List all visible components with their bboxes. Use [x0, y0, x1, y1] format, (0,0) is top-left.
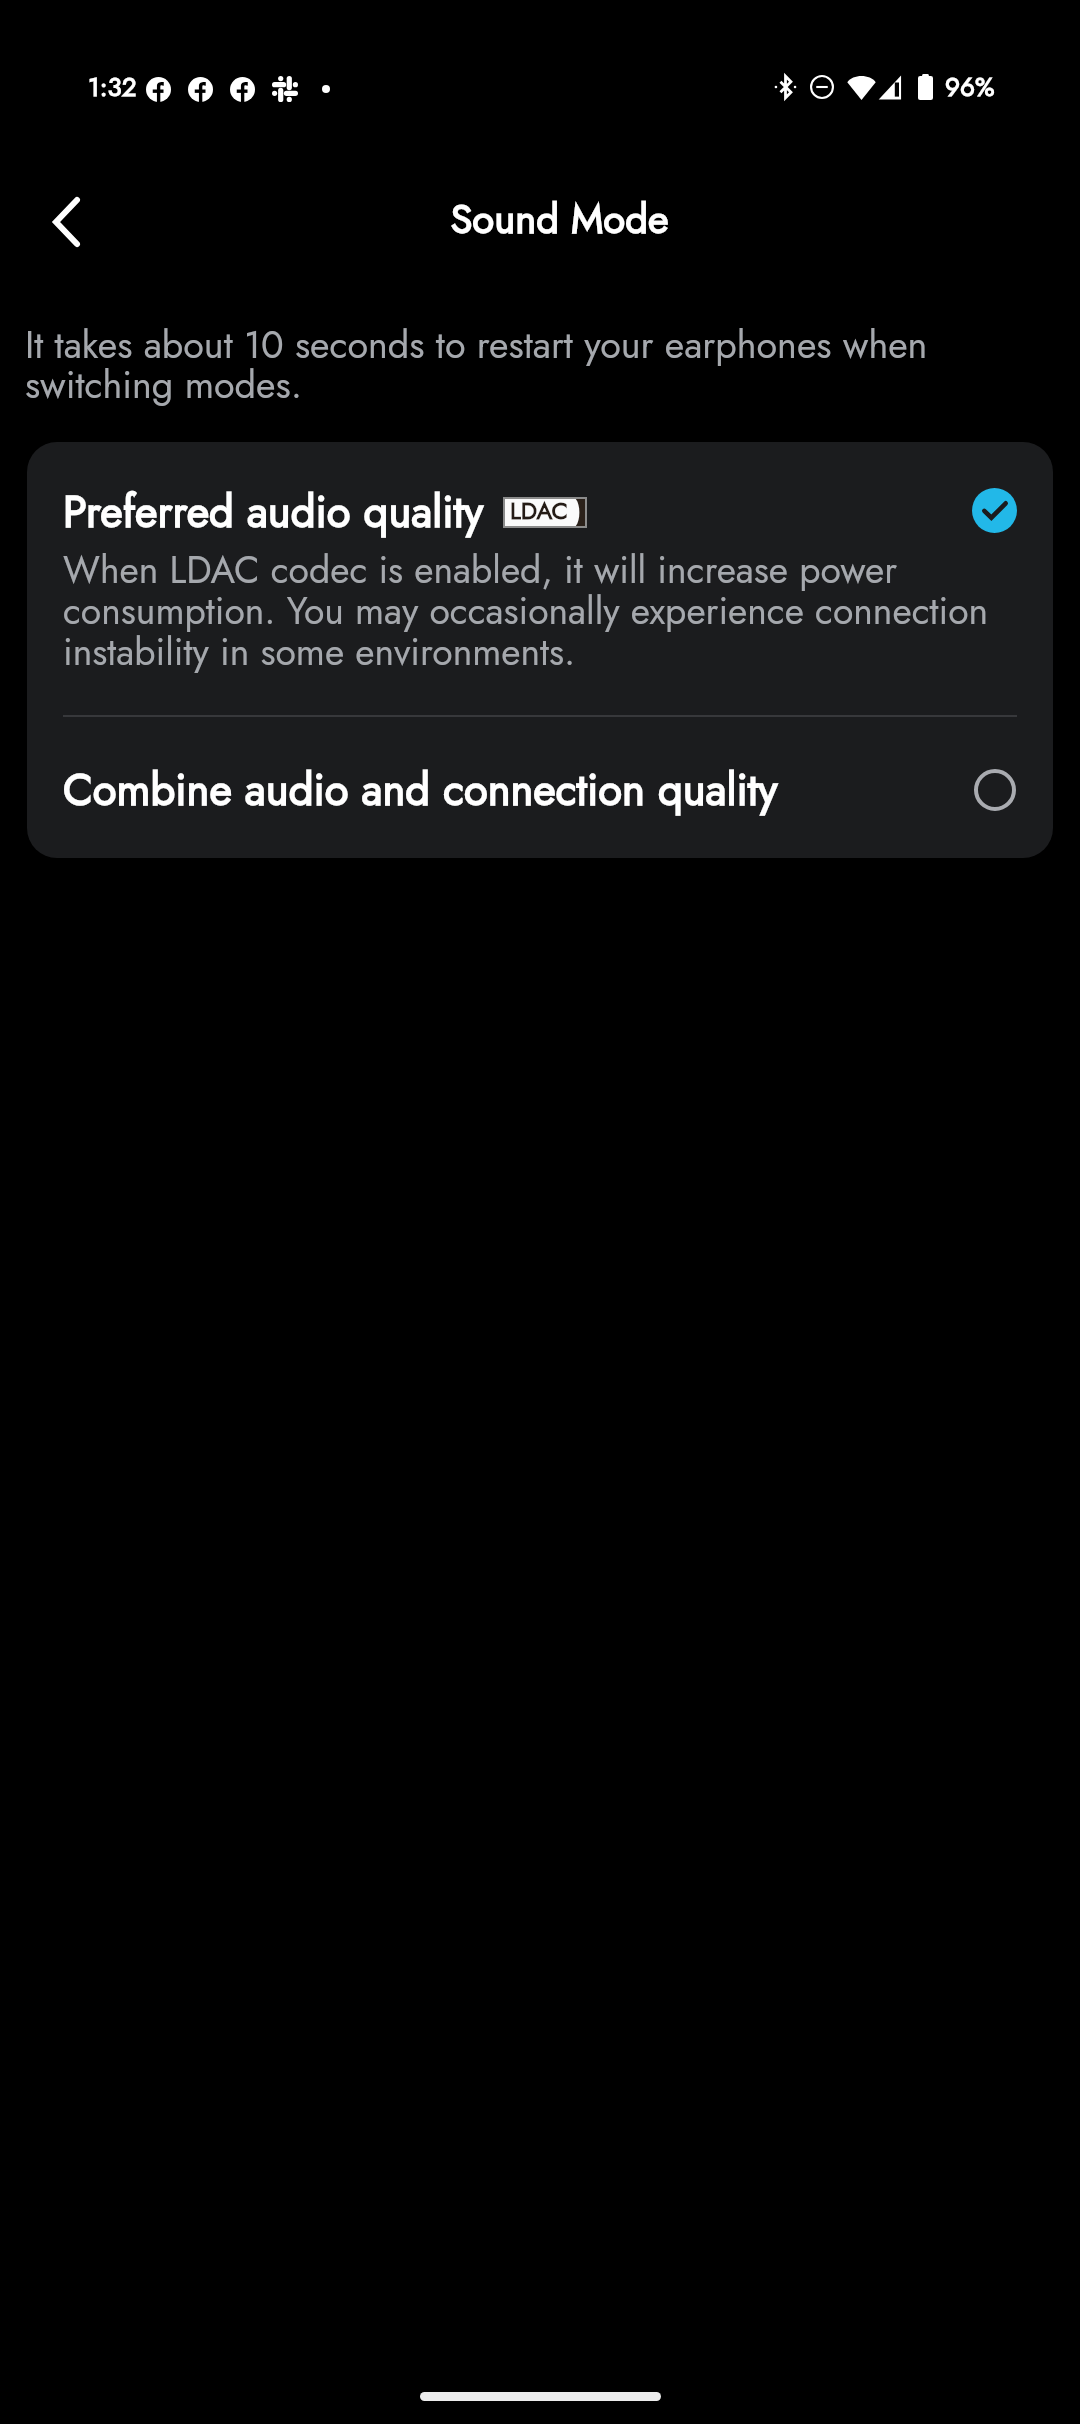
staticText: Sound Mode — [450, 200, 669, 244]
button[interactable]: Back — [20, 176, 112, 268]
staticText: 1:32 — [88, 75, 137, 103]
staticText: Preferred audio quality — [63, 494, 484, 538]
staticText: 96% — [945, 75, 995, 103]
button[interactable]: Combine audio and connection quality — [27, 716, 1053, 858]
other: Selected — [972, 488, 1017, 533]
other: Not selected — [974, 769, 1016, 811]
staticText: It takes about 10 seconds to restart you… — [25, 328, 1020, 408]
staticText: LDAC — [510, 500, 568, 526]
staticText: When LDAC codec is enabled, it will incr… — [63, 553, 1041, 676]
staticText: Combine audio and connection quality — [63, 772, 778, 816]
button[interactable]: Preferred audio quality — [27, 442, 1053, 716]
